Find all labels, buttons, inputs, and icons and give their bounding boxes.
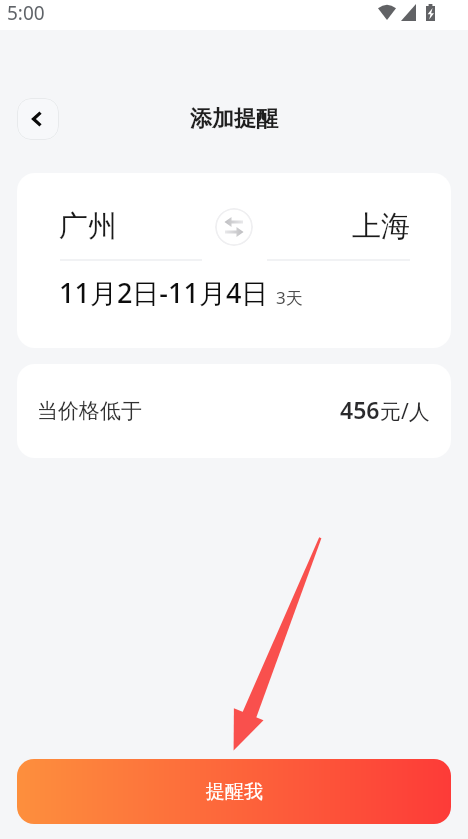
staticText: 添加提醒 (0, 105, 468, 133)
button[interactable]: 11月2日-11月4日 (59, 274, 303, 311)
staticText: 提醒我 (206, 780, 263, 804)
staticText: 3天 (276, 286, 303, 309)
button[interactable]: 提醒我 (17, 759, 451, 824)
staticText: 元/人 (380, 397, 430, 426)
button[interactable]: Back (17, 98, 59, 140)
button[interactable]: 广州 (59, 208, 117, 245)
staticText: 当价格低于 (37, 398, 142, 424)
button[interactable]: 上海 (352, 208, 410, 245)
staticText: 5:00 (7, 0, 45, 26)
button[interactable]: Swap departure and destination (215, 208, 253, 246)
staticText: 456 (340, 394, 380, 425)
button[interactable]: 当价格低于 (17, 364, 451, 458)
staticText: 11月2日-11月4日 (59, 274, 269, 311)
